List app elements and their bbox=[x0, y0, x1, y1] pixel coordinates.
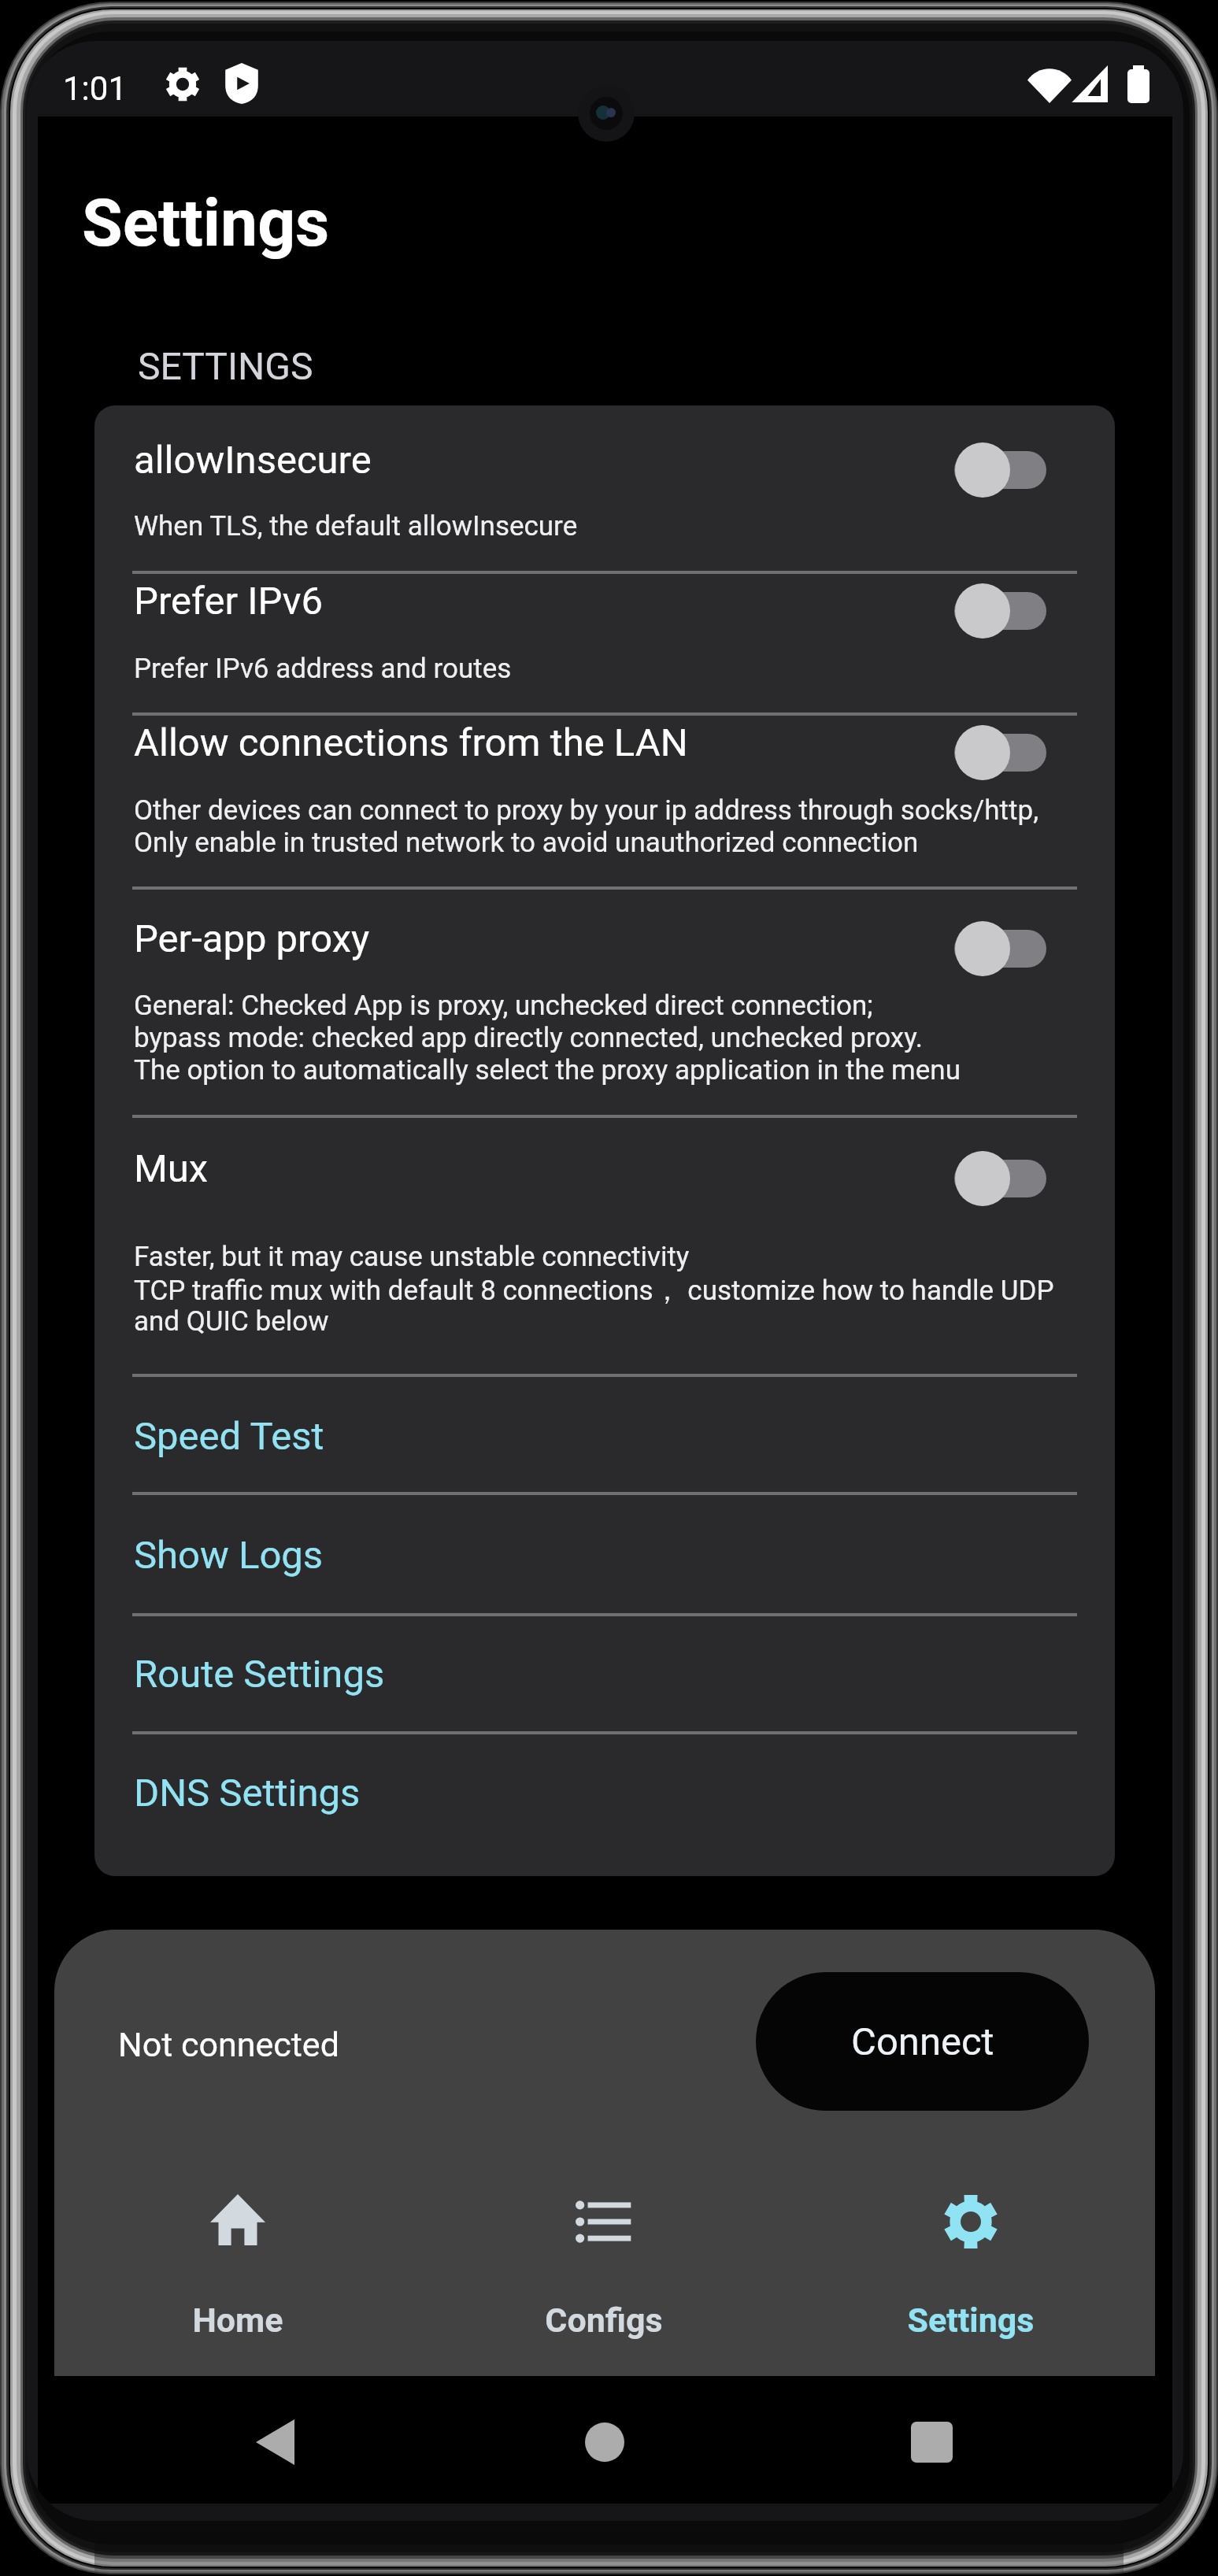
button[interactable]: Mux bbox=[94, 1115, 1115, 1374]
staticText: 1:01 bbox=[63, 69, 127, 108]
button[interactable]: Allow connections from the LAN bbox=[94, 712, 1115, 886]
button[interactable]: allowInsecure bbox=[94, 405, 1115, 571]
button[interactable]: Show Logs bbox=[94, 1495, 1115, 1611]
staticText: allowInsecure bbox=[134, 438, 372, 483]
staticText: Speed Test bbox=[134, 1414, 324, 1459]
button[interactable]: Settings bbox=[845, 2158, 1097, 2339]
button[interactable]: Per-app proxy bbox=[94, 886, 1115, 1115]
staticText: The option to automatically select the p… bbox=[134, 1054, 961, 1086]
staticText: Other devices can connect to proxy by yo… bbox=[134, 794, 1039, 827]
button[interactable]: Toggle Allow connections from the LAN bbox=[949, 718, 1081, 787]
button[interactable]: Toggle Per-app proxy bbox=[949, 914, 1081, 983]
button[interactable]: DNS Settings bbox=[94, 1734, 1115, 1850]
staticText: When TLS, the default allowInsecure bbox=[134, 510, 578, 542]
button[interactable]: Home bbox=[530, 2379, 679, 2505]
staticText: DNS Settings bbox=[134, 1771, 361, 1815]
staticText: Faster, but it may cause unstable connec… bbox=[134, 1241, 690, 1273]
staticText: Only enable in trusted network to avoid … bbox=[134, 827, 919, 859]
staticText: bypass mode: checked app directly connec… bbox=[134, 1022, 924, 1054]
button[interactable]: Toggle Prefer IPv6 bbox=[949, 576, 1081, 646]
staticText: Route Settings bbox=[134, 1652, 385, 1697]
staticText: Configs bbox=[478, 2300, 730, 2340]
staticText: Prefer IPv6 address and routes bbox=[134, 653, 512, 685]
staticText: and QUIC below bbox=[134, 1305, 329, 1338]
staticText: Home bbox=[112, 2300, 364, 2340]
button[interactable]: Toggle Mux bbox=[949, 1144, 1081, 1213]
staticText: General: Checked App is proxy, unchecked… bbox=[134, 990, 873, 1022]
button[interactable]: Speed Test bbox=[94, 1377, 1115, 1493]
staticText: Settings bbox=[845, 2300, 1097, 2340]
staticText: Allow connections from the LAN bbox=[134, 720, 688, 765]
button[interactable]: Toggle allowInsecure bbox=[949, 435, 1081, 505]
staticText: Not connected bbox=[118, 2025, 339, 2064]
staticText: Per-app proxy bbox=[134, 916, 370, 961]
staticText: Settings bbox=[82, 184, 330, 261]
button[interactable]: Prefer IPv6 bbox=[94, 571, 1115, 712]
button[interactable]: Connect bbox=[756, 1972, 1089, 2111]
button[interactable]: Back bbox=[181, 2379, 331, 2505]
staticText: Show Logs bbox=[134, 1533, 324, 1578]
button[interactable]: Recent apps bbox=[857, 2379, 1006, 2505]
staticText: TCP traffic mux with default 8 connectio… bbox=[134, 1273, 1054, 1308]
button[interactable]: Route Settings bbox=[94, 1616, 1115, 1732]
button[interactable]: Configs bbox=[478, 2158, 730, 2339]
staticText: Mux bbox=[134, 1146, 209, 1191]
staticText: SETTINGS bbox=[138, 344, 313, 388]
staticText: Connect bbox=[851, 2019, 994, 2064]
button[interactable]: Home bbox=[112, 2158, 364, 2339]
staticText: Prefer IPv6 bbox=[134, 579, 324, 624]
